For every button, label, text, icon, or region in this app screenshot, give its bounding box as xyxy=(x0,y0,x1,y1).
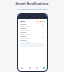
button[interactable] xyxy=(20,35,45,39)
button[interactable]: Tab xyxy=(33,64,40,71)
staticText: All Your Alerts in One Place xyxy=(17,7,48,10)
button[interactable] xyxy=(20,39,45,43)
staticText: Smart Notifications xyxy=(15,1,49,6)
button[interactable] xyxy=(20,23,45,27)
button[interactable]: Tab xyxy=(18,64,26,71)
button[interactable]: Tab xyxy=(26,64,33,71)
button[interactable]: Tab xyxy=(40,64,47,71)
button[interactable] xyxy=(20,27,45,31)
button[interactable] xyxy=(20,31,45,35)
